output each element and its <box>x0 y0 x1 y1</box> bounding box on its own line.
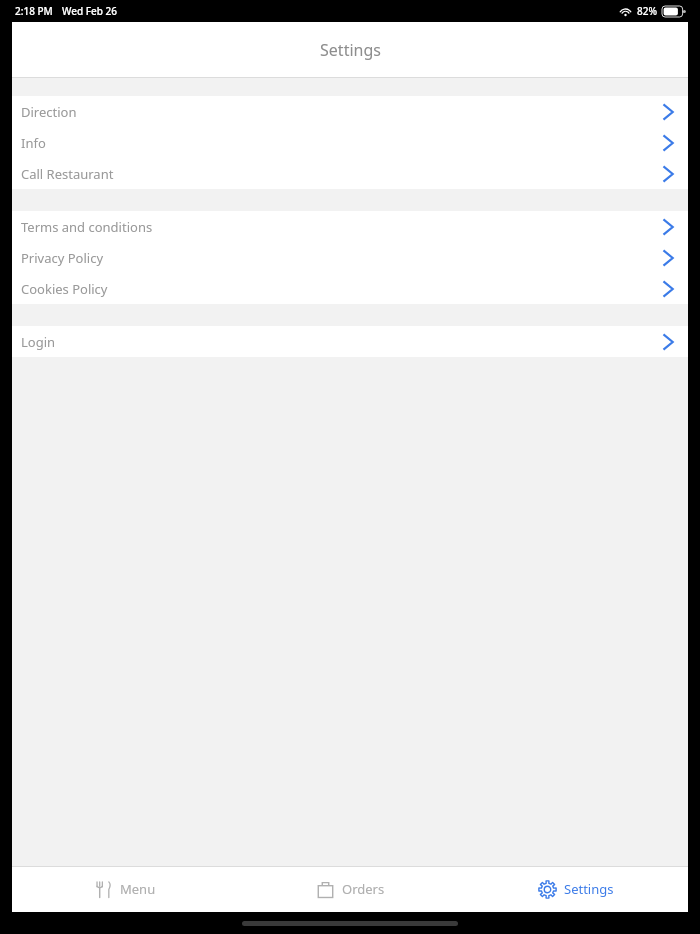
button[interactable]: Settings <box>463 866 688 912</box>
staticText: Privacy Policy <box>21 249 104 267</box>
staticText: 2:18 PM <box>15 4 53 18</box>
staticText: Login <box>21 333 56 351</box>
staticText: Wed Feb 26 <box>62 4 118 18</box>
button[interactable]: Info <box>12 127 688 158</box>
button[interactable]: Cookies Policy <box>12 273 688 304</box>
staticText: Menu <box>120 880 156 898</box>
button[interactable]: Direction <box>12 96 688 127</box>
button[interactable]: Login <box>12 326 688 357</box>
button[interactable]: Orders <box>238 866 463 912</box>
staticText: Direction <box>21 103 77 121</box>
staticText: Orders <box>342 880 385 898</box>
staticText: Terms and conditions <box>21 218 153 236</box>
button[interactable]: Terms and conditions <box>12 211 688 242</box>
staticText: Cookies Policy <box>21 280 108 298</box>
staticText: Call Restaurant <box>21 165 114 183</box>
staticText: 82% <box>637 4 657 18</box>
button[interactable]: Call Restaurant <box>12 158 688 189</box>
staticText: Info <box>21 134 46 152</box>
button[interactable]: Menu <box>12 866 238 912</box>
staticText: Settings <box>320 39 381 61</box>
button[interactable]: Privacy Policy <box>12 242 688 273</box>
staticText: Settings <box>564 880 614 898</box>
